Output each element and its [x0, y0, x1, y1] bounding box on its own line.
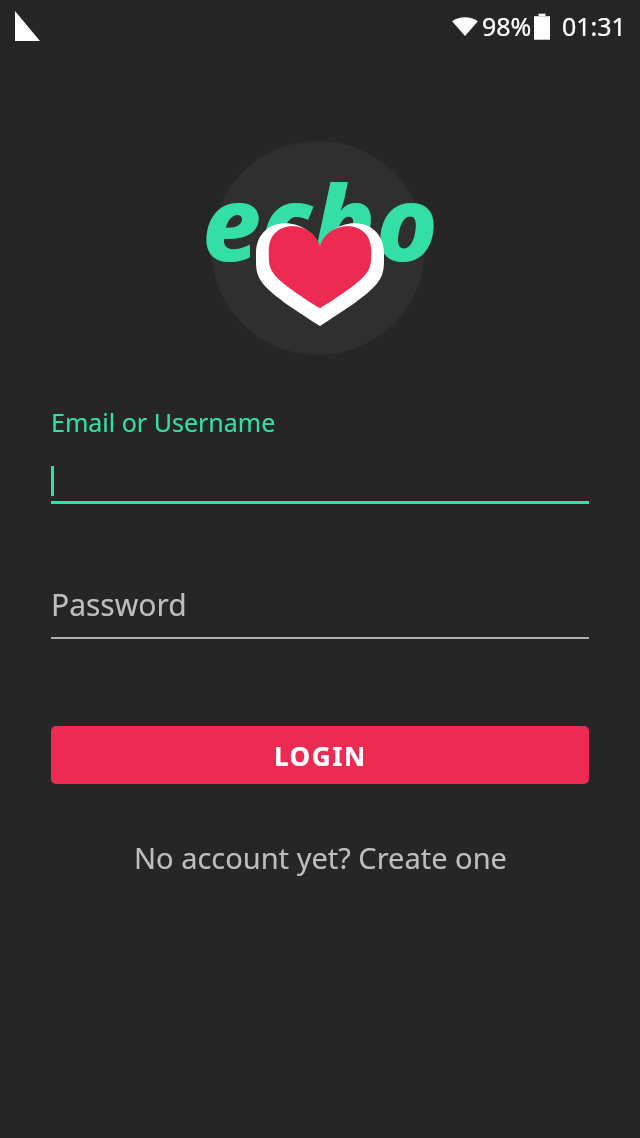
staticText: Password [51, 584, 187, 625]
staticText: echo [202, 150, 438, 292]
button[interactable]: No account yet? Create one [122, 832, 519, 883]
staticText: Email or Username [51, 405, 276, 439]
button[interactable]: LOGIN [51, 726, 589, 784]
staticText: 01:31 [562, 9, 626, 43]
button[interactable]: Password [0, 584, 640, 639]
staticText: 98% [482, 9, 532, 43]
staticText: No account yet? Create one [134, 838, 507, 877]
staticText: LOGIN [274, 738, 367, 773]
button[interactable]: Email or Username [0, 405, 640, 504]
